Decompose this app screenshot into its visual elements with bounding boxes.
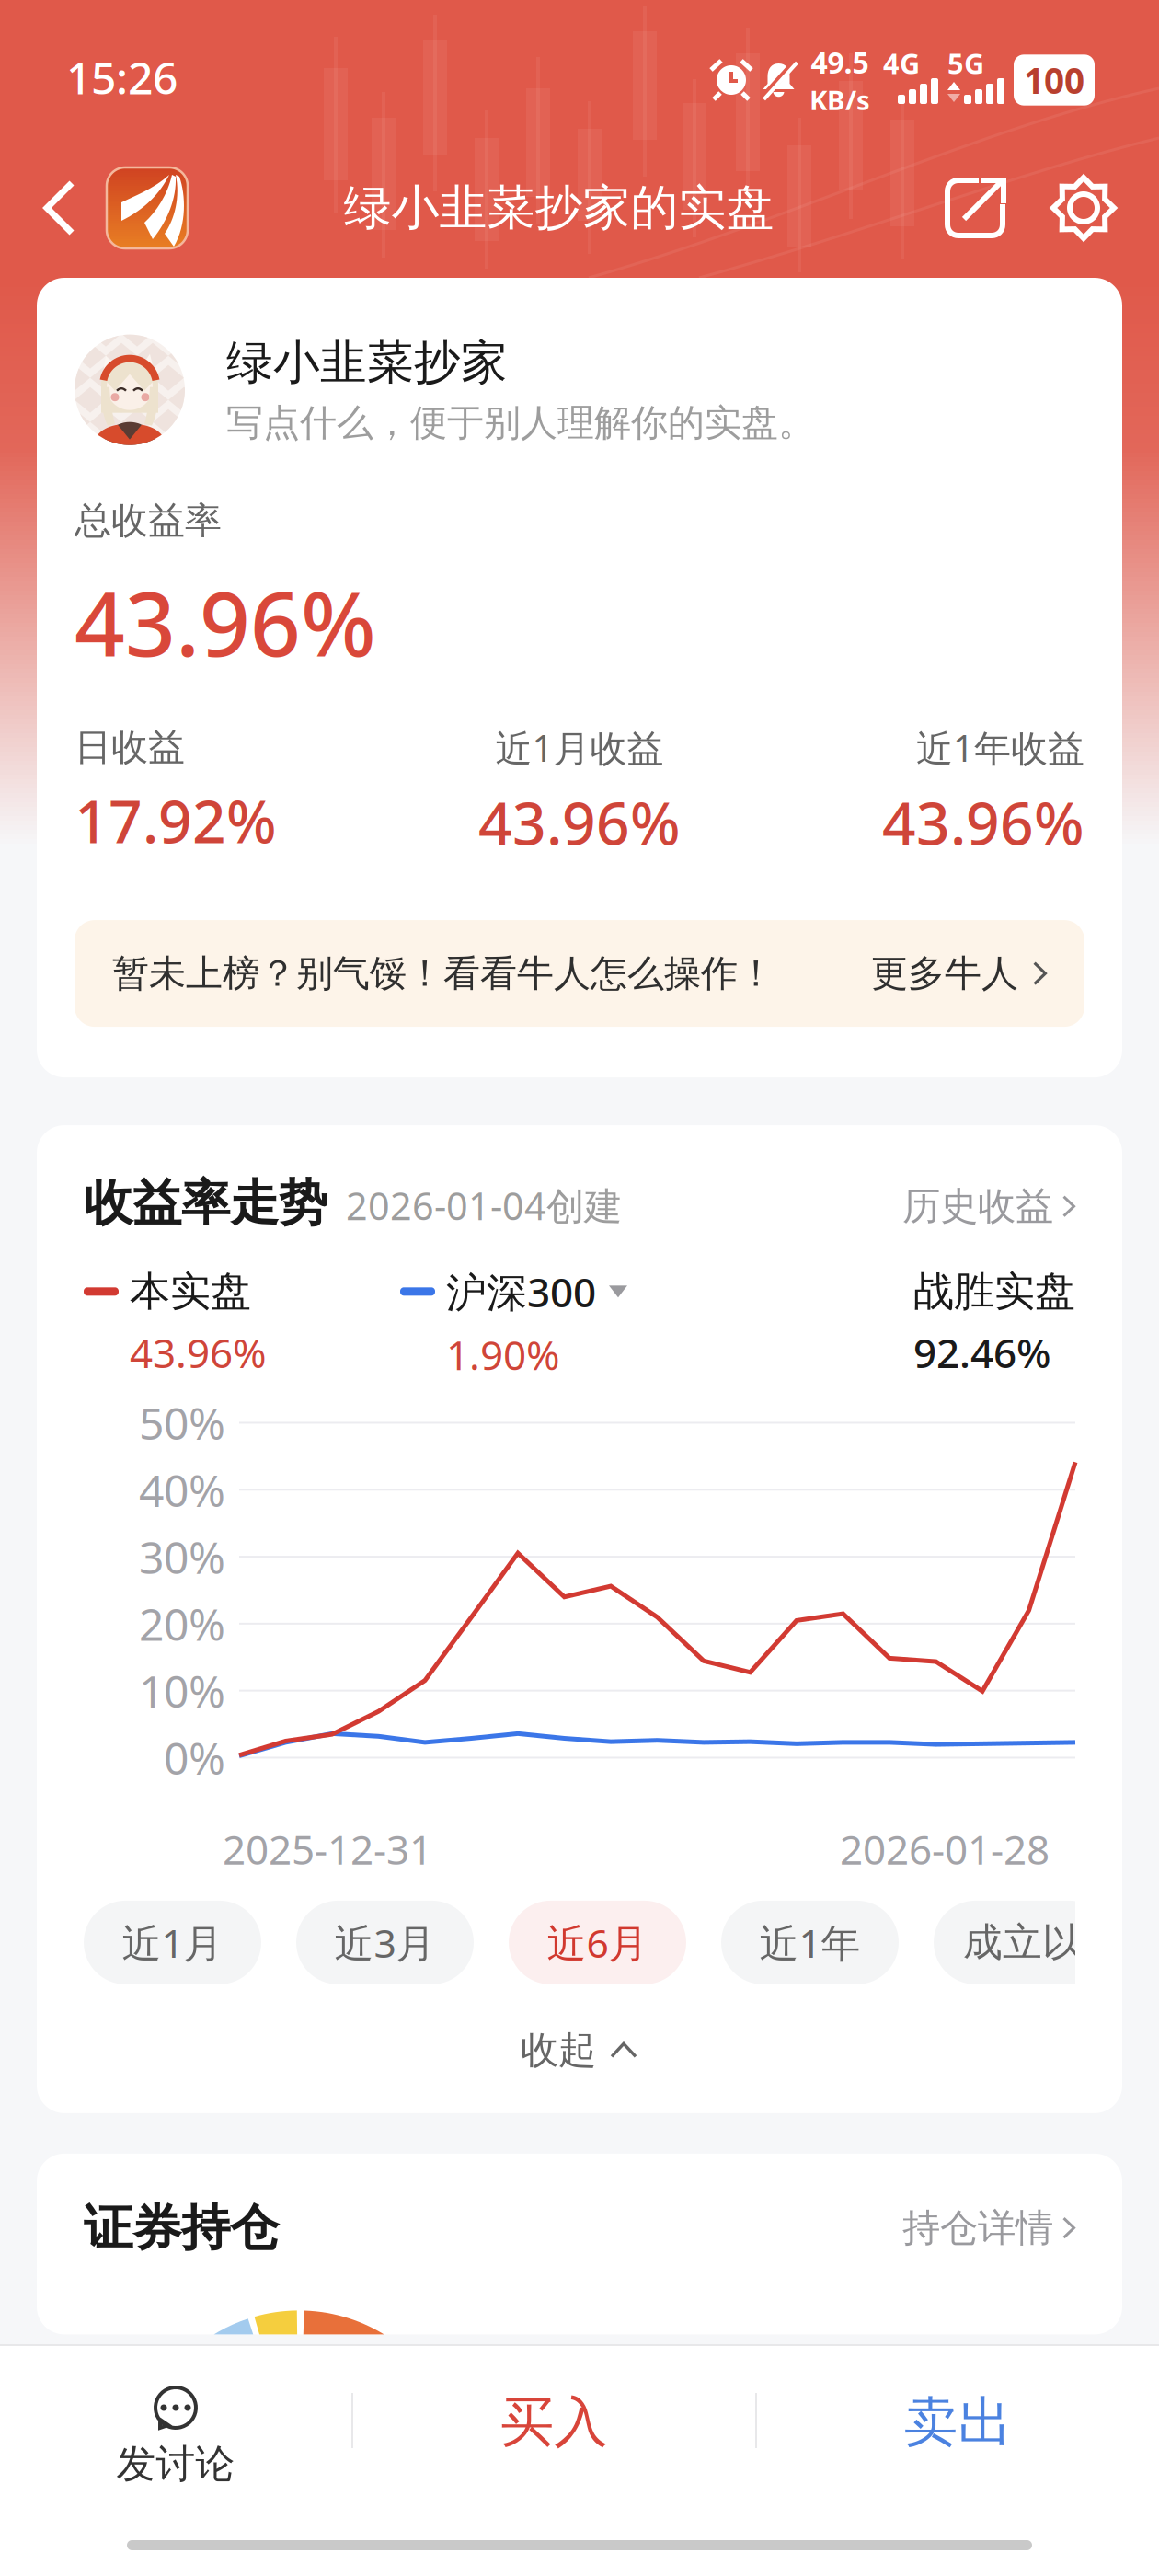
button[interactable]: Back: [22, 157, 97, 259]
button[interactable]: 成立以: [934, 1901, 1111, 1984]
staticText: 证券持仓: [84, 2198, 279, 2258]
staticText: 4G: [883, 44, 920, 82]
staticText: 100: [1024, 56, 1084, 104]
staticText: 10%: [139, 1661, 225, 1720]
staticText: 总收益率: [75, 498, 222, 543]
staticText: 战胜实盘: [913, 1267, 1075, 1316]
staticText: 绿小韭菜抄家的实盘: [344, 179, 774, 237]
button[interactable]: 买入: [353, 2346, 755, 2521]
button[interactable]: 历史收益: [902, 1183, 1075, 1233]
staticText: 43.96%: [882, 783, 1084, 861]
staticText: 5G: [947, 44, 984, 82]
button[interactable]: 近1月: [84, 1901, 261, 1984]
staticText: 本实盘: [130, 1267, 251, 1316]
staticText: 近1年收益: [916, 723, 1084, 772]
staticText: 卖出: [904, 2389, 1012, 2456]
button[interactable]: 发讨论: [0, 2346, 351, 2521]
staticText: 持仓详情: [902, 2205, 1053, 2251]
staticText: 2026-01-04创建: [346, 1180, 622, 1231]
staticText: 2025-12-31: [223, 1822, 432, 1876]
staticText: 绿小韭菜抄家: [226, 334, 508, 391]
staticText: 30%: [139, 1527, 225, 1586]
staticText: 50%: [139, 1393, 225, 1452]
staticText: 92.46%: [913, 1326, 1050, 1379]
staticText: 历史收益: [902, 1183, 1053, 1230]
staticText: 近1月收益: [495, 723, 664, 772]
staticText: 49.5: [811, 43, 869, 82]
staticText: 成立以: [963, 1918, 1082, 1967]
staticText: 1.90%: [446, 1328, 560, 1381]
staticText: 近6月: [547, 1916, 648, 1969]
staticText: 近1年: [759, 1916, 861, 1969]
button[interactable]: 持仓详情: [902, 2205, 1075, 2251]
staticText: 收益率走势: [84, 1173, 327, 1233]
staticText: KB/s: [809, 82, 870, 118]
staticText: 写点什么，便于别人理解你的实盘。: [226, 400, 815, 446]
staticText: 43.96%: [75, 563, 376, 681]
staticText: 17.92%: [75, 781, 277, 859]
button[interactable]: App home: [97, 157, 198, 259]
staticText: 近1月: [122, 1916, 223, 1969]
button[interactable]: 暂未上榜？别气馁！看看牛人怎么操作！: [75, 920, 1084, 1027]
staticText: 15:26: [66, 48, 178, 107]
button[interactable]: 收起: [84, 2023, 1075, 2077]
staticText: 更多牛人: [871, 951, 1018, 996]
staticText: 发讨论: [116, 2440, 235, 2488]
button[interactable]: 近6月: [509, 1901, 686, 1984]
staticText: 2026-01-28: [840, 1822, 1050, 1876]
button[interactable]: 近3月: [296, 1901, 474, 1984]
button[interactable]: Share: [920, 157, 1030, 259]
staticText: 收起: [521, 2027, 596, 2073]
staticText: 买入: [500, 2389, 608, 2456]
staticText: 0%: [164, 1728, 225, 1787]
staticText: 20%: [139, 1594, 225, 1653]
button[interactable]: 卖出: [757, 2346, 1159, 2521]
staticText: 沪深300: [446, 1265, 596, 1318]
staticText: 日收益: [75, 725, 185, 770]
button[interactable]: 近1年: [721, 1901, 899, 1984]
staticText: 40%: [139, 1460, 225, 1519]
staticText: 43.96%: [130, 1326, 267, 1379]
staticText: 暂未上榜？别气馁！看看牛人怎么操作！: [112, 951, 775, 996]
staticText: 43.96%: [478, 783, 681, 861]
button[interactable]: Settings: [1030, 157, 1137, 259]
staticText: 近3月: [334, 1916, 436, 1969]
